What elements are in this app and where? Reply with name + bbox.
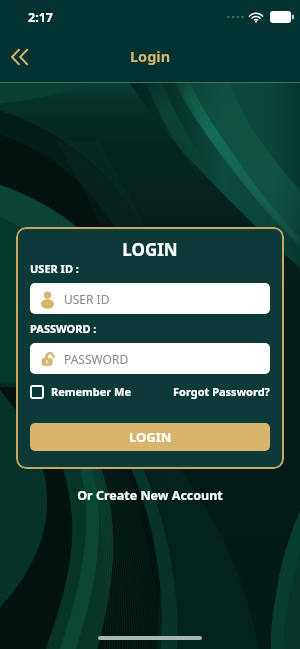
staticText: LOGIN (129, 428, 172, 446)
staticText: PASSWORD : (30, 321, 97, 336)
staticText: Login (130, 46, 171, 66)
staticText: USER ID : (30, 261, 79, 276)
staticText: USER ID (64, 291, 110, 307)
staticText: Remember Me (51, 384, 132, 399)
button[interactable]: USER ID (30, 283, 270, 314)
button[interactable]: Back (2, 40, 36, 74)
button[interactable]: PASSWORD (30, 343, 270, 374)
button[interactable]: Forgot Password? (173, 384, 270, 399)
staticText: PASSWORD (64, 351, 129, 367)
button[interactable]: Remember Me (30, 384, 132, 399)
staticText: 2:17 (28, 9, 53, 26)
button[interactable]: Or Create New Account (0, 487, 300, 504)
staticText: LOGIN (30, 238, 270, 261)
button[interactable]: LOGIN (30, 423, 270, 451)
